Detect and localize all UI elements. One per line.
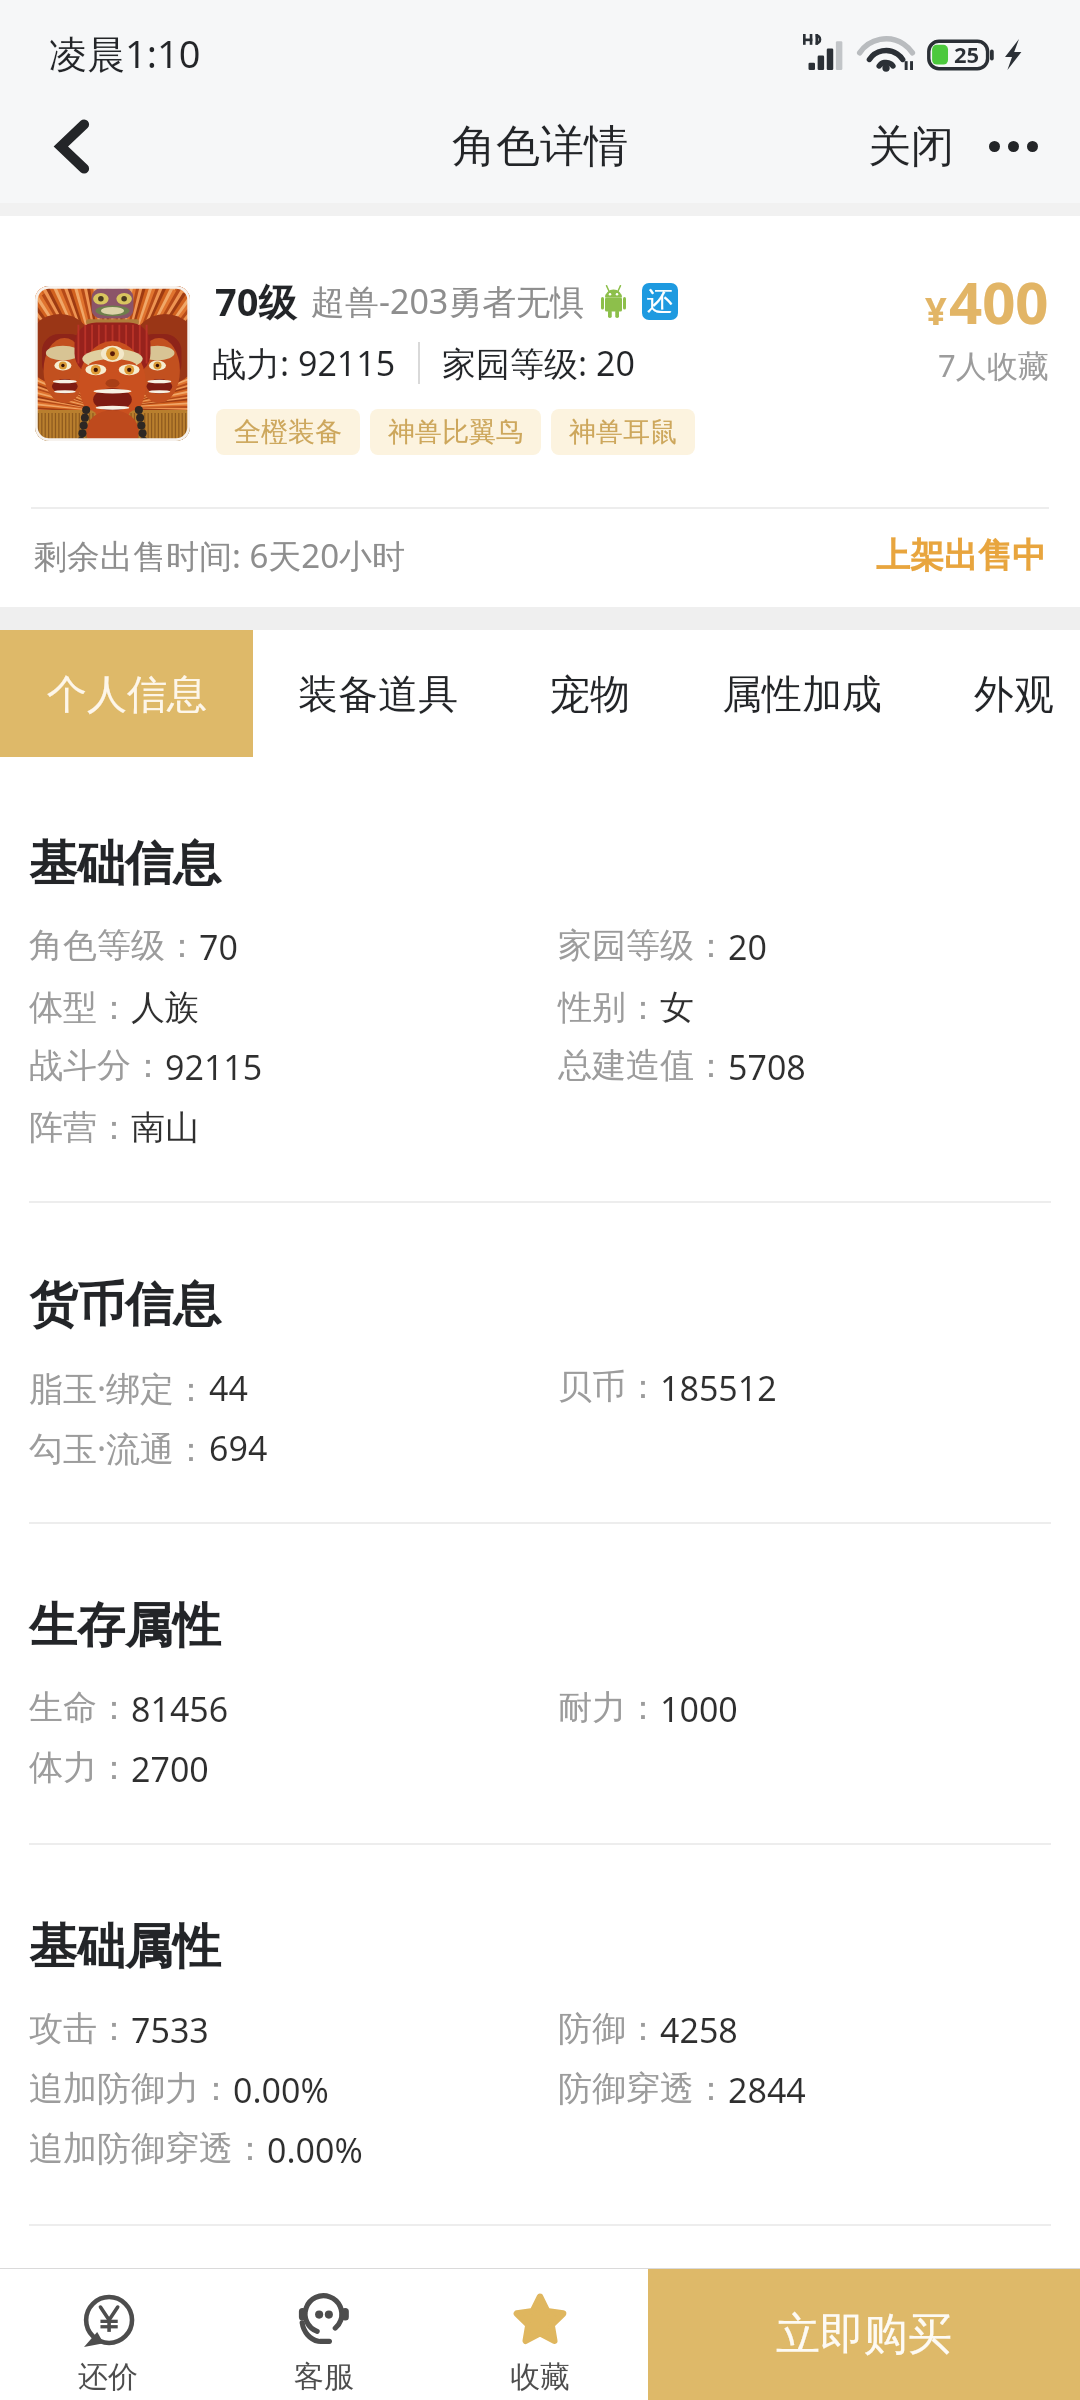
staticText: 1000 (660, 1686, 738, 1732)
staticText: 攻击： (29, 2007, 131, 2050)
staticText: 战力: 92115 (212, 340, 396, 386)
staticText: 角色详情 (452, 119, 628, 174)
staticText: 生命： (29, 1686, 131, 1729)
staticText: 追加防御力： (29, 2067, 233, 2110)
staticText: 400 (949, 262, 1049, 341)
staticText: 2700 (131, 1746, 209, 1792)
button[interactable]: 个人信息 (0, 630, 253, 757)
staticText: 家园等级: 20 (442, 340, 635, 386)
staticText: 耐力： (558, 1686, 660, 1729)
staticText: 防御： (558, 2007, 660, 2050)
staticText: 收藏 (510, 2358, 570, 2396)
staticText: 81456 (131, 1686, 229, 1732)
staticText: 立即购买 (776, 2307, 952, 2362)
staticText: 装备道具 (298, 669, 458, 719)
staticText: 2844 (728, 2067, 806, 2113)
staticText: 92115 (165, 1044, 263, 1090)
staticText: 客服 (294, 2358, 354, 2396)
staticText: 70级 (215, 275, 297, 327)
button[interactable]: 收藏 (432, 2269, 648, 2400)
staticText: 人族 (131, 986, 199, 1029)
staticText: 0.00% (267, 2127, 363, 2173)
button[interactable]: 70级 (0, 216, 1080, 607)
staticText: 全橙装备 (234, 415, 342, 449)
staticText: 剩余出售时间: 6天20小时 (34, 533, 406, 578)
staticText: 44 (209, 1365, 248, 1411)
staticText: 关闭 (868, 120, 954, 174)
button[interactable]: 关闭 (854, 90, 968, 203)
staticText: 追加防御穿透： (29, 2127, 267, 2170)
staticText: 勾玉·流通： (29, 1425, 209, 1471)
staticText: 上架出售中 (876, 534, 1046, 577)
staticText: 基础信息 (29, 834, 221, 894)
staticText: 神兽比翼鸟 (388, 415, 523, 449)
button[interactable]: 装备道具 (276, 630, 480, 757)
staticText: 25 (954, 39, 980, 69)
staticText: 性别： (558, 986, 660, 1029)
staticText: 脂玉·绑定： (29, 1365, 209, 1411)
staticText: 总建造值： (558, 1044, 728, 1087)
staticText: 家园等级： (558, 924, 728, 967)
staticText: 外观 (974, 669, 1054, 719)
staticText: 基础属性 (29, 1917, 221, 1977)
button[interactable]: 还价 (0, 2269, 216, 2400)
button[interactable]: 立即购买 (648, 2269, 1080, 2400)
button[interactable]: 宠物 (528, 630, 652, 757)
staticText: 20 (728, 924, 767, 970)
staticText: 70 (199, 924, 238, 970)
staticText: 属性加成 (722, 669, 882, 719)
staticText: 体力： (29, 1746, 131, 1789)
staticText: 宠物 (550, 669, 630, 719)
staticText: 神兽耳鼠 (569, 415, 677, 449)
staticText: ¥ (925, 284, 947, 336)
button[interactable]: 更多 (968, 90, 1058, 203)
staticText: 5708 (728, 1044, 806, 1090)
staticText: 凌晨1:10 (49, 27, 201, 79)
staticText: 超兽-203勇者无惧 (311, 278, 585, 324)
staticText: 7533 (131, 2007, 209, 2053)
staticText: 阵营： (29, 1106, 131, 1149)
staticText: 战斗分： (29, 1044, 165, 1087)
button[interactable]: 返回 (0, 90, 144, 203)
staticText: 女 (660, 986, 694, 1029)
button[interactable]: 外观 (952, 630, 1076, 757)
staticText: 南山 (131, 1106, 199, 1149)
staticText: 防御穿透： (558, 2067, 728, 2110)
staticText: 还 (647, 285, 673, 318)
staticText: 还价 (78, 2358, 138, 2396)
staticText: 694 (209, 1425, 268, 1471)
button[interactable]: 客服 (216, 2269, 432, 2400)
staticText: 7人收藏 (938, 344, 1049, 386)
staticText: 4258 (660, 2007, 738, 2053)
staticText: 185512 (660, 1365, 777, 1411)
staticText: 贝币： (558, 1365, 660, 1408)
staticText: 角色等级： (29, 924, 199, 967)
staticText: 0.00% (233, 2067, 329, 2113)
button[interactable]: 属性加成 (700, 630, 904, 757)
staticText: 个人信息 (47, 669, 207, 719)
staticText: 货币信息 (29, 1275, 221, 1335)
staticText: 生存属性 (29, 1596, 221, 1656)
staticText: 体型： (29, 986, 131, 1029)
